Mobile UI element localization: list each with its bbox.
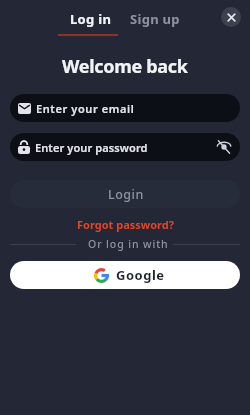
staticText: Enter your email [36,101,135,116]
button[interactable]: Enter your password [10,133,240,161]
staticText: Or log in with [88,237,169,251]
button[interactable]: Login [10,180,240,208]
button[interactable] [221,7,241,27]
staticText: Google [116,266,165,284]
staticText: Sign up [130,10,180,28]
staticText: Forgot password? [77,217,174,232]
staticText: Log in [70,10,112,28]
button[interactable]: Sign up [130,10,180,28]
button[interactable]: Log in [58,10,118,36]
button[interactable]: Forgot password? [77,217,174,232]
button[interactable]: Enter your email [10,94,240,122]
button[interactable]: Google [10,261,240,289]
staticText: Enter your password [35,140,148,155]
staticText: Welcome back [62,54,188,79]
staticText: Login [108,186,144,203]
